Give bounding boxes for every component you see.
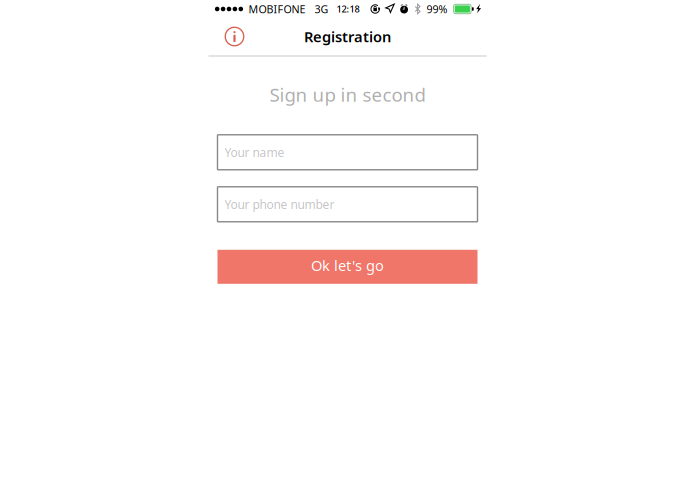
staticText: MOBIFONE: [248, 2, 305, 16]
button[interactable]: Ok let's go: [217, 250, 477, 284]
button[interactable]: Your phone number: [217, 187, 477, 222]
button[interactable]: Your name: [217, 135, 477, 170]
staticText: 99%: [427, 2, 448, 16]
button[interactable]: Info: [218, 20, 250, 52]
staticText: 12:18: [336, 3, 359, 15]
staticText: Your phone number: [224, 196, 334, 212]
staticText: 3G: [314, 2, 328, 16]
staticText: Registration: [304, 27, 391, 46]
staticText: Sign up in second: [269, 82, 425, 107]
staticText: Ok let's go: [311, 256, 384, 275]
staticText: Your name: [224, 144, 284, 160]
